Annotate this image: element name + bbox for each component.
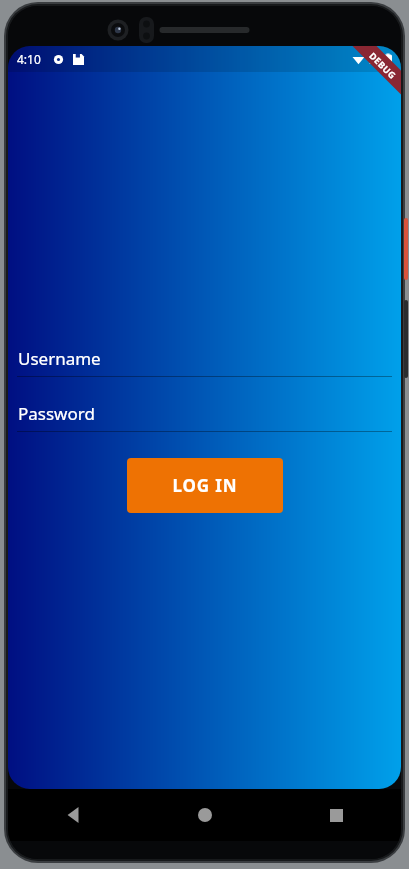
staticText: Password <box>18 402 95 425</box>
staticText: LOG IN <box>172 474 238 497</box>
staticText: DEBUG <box>367 49 399 81</box>
button[interactable]: Username <box>17 340 392 377</box>
staticText: 4:10 <box>17 51 41 67</box>
button[interactable]: Recent apps <box>312 791 360 839</box>
button[interactable]: Back <box>50 791 98 839</box>
button[interactable]: Home <box>181 791 229 839</box>
staticText: Username <box>18 347 101 370</box>
button[interactable]: Password <box>17 395 392 432</box>
button[interactable]: LOG IN <box>127 458 283 513</box>
